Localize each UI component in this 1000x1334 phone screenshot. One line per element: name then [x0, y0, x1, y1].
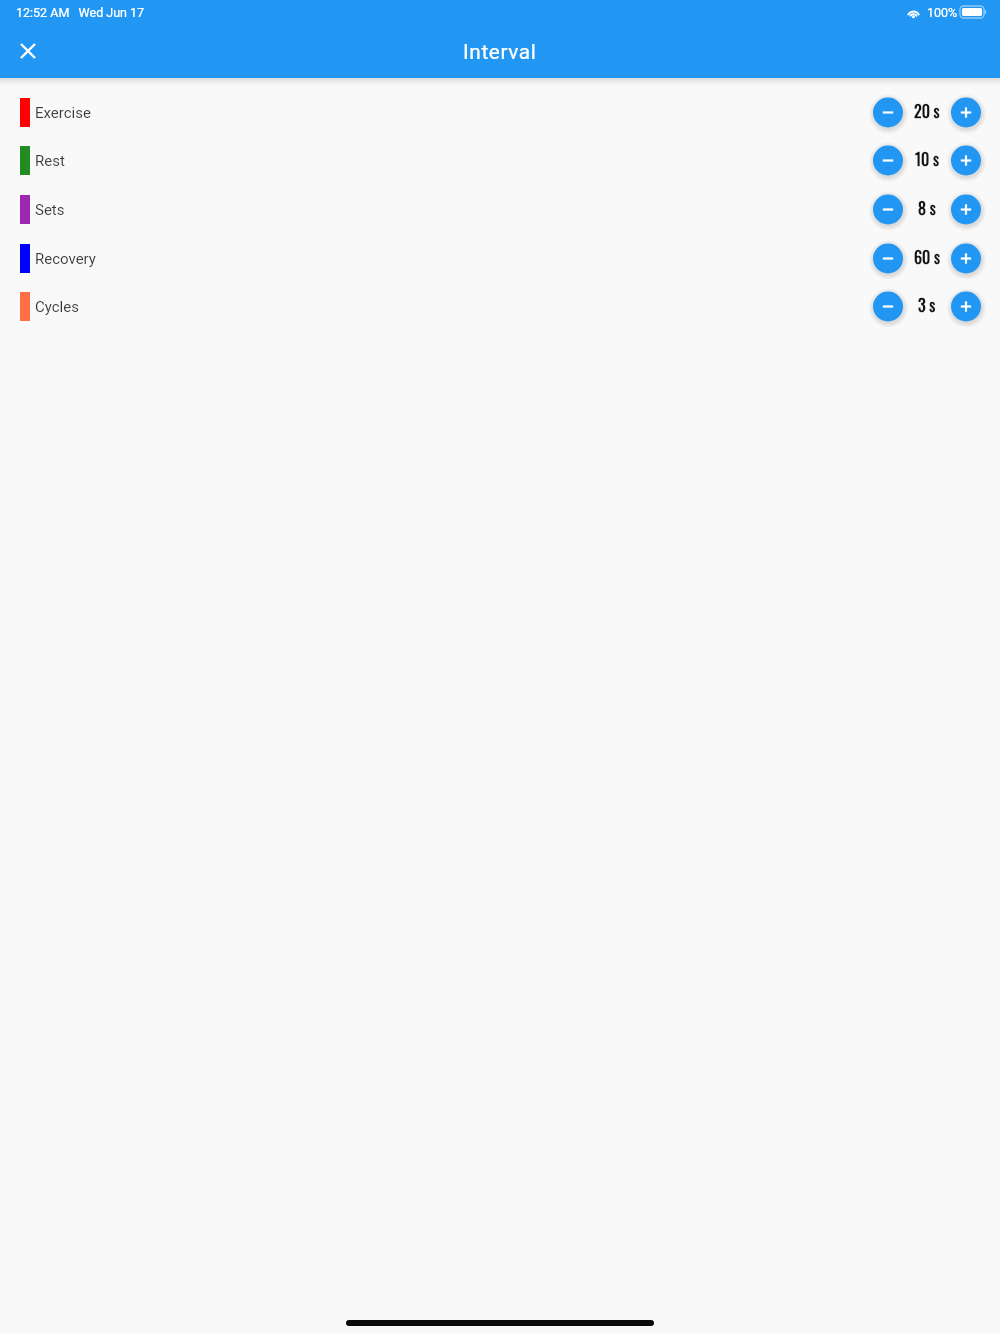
staticText: 100% — [927, 5, 958, 20]
button[interactable]: Cycles — [0, 282, 1000, 331]
staticText: Interval — [463, 40, 537, 64]
button[interactable]: Decrease — [871, 193, 905, 227]
button[interactable]: Increase — [949, 144, 983, 178]
staticText: 12:52 AM Wed Jun 17 — [16, 5, 145, 20]
button[interactable]: Decrease — [871, 144, 905, 178]
button[interactable]: Decrease — [871, 242, 905, 276]
staticText: Rest — [35, 152, 65, 170]
staticText: 20 s — [914, 99, 940, 123]
button[interactable]: Sets — [0, 185, 1000, 234]
staticText: 3 s — [918, 293, 936, 317]
button[interactable]: Decrease — [871, 290, 905, 324]
button[interactable]: Recovery — [0, 234, 1000, 283]
staticText: Recovery — [35, 250, 96, 268]
button[interactable]: Increase — [949, 96, 983, 130]
staticText: Exercise — [35, 104, 91, 122]
staticText: Cycles — [35, 298, 79, 316]
staticText: 10 s — [915, 147, 939, 171]
staticText: 8 s — [918, 196, 936, 220]
button[interactable]: Rest — [0, 136, 1000, 185]
button[interactable]: Increase — [949, 242, 983, 276]
button[interactable]: Decrease — [871, 96, 905, 130]
staticText: 60 s — [914, 245, 940, 269]
staticText: Sets — [35, 201, 65, 219]
button[interactable]: Increase — [949, 290, 983, 324]
button[interactable]: Increase — [949, 193, 983, 227]
button[interactable]: Exercise — [0, 88, 1000, 137]
button[interactable]: Close — [7, 30, 49, 72]
